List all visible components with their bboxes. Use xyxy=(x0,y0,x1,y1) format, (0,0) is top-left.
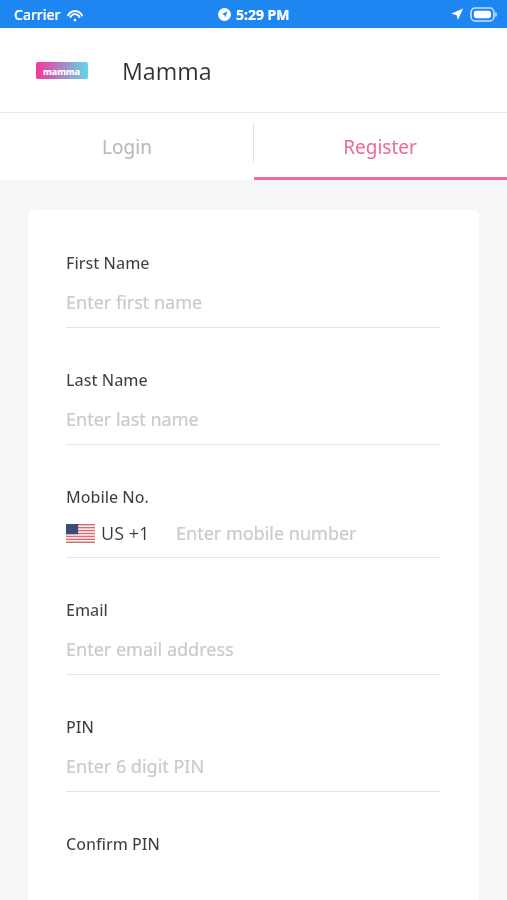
staticText: 5:29 PM xyxy=(236,5,290,24)
button[interactable]: First Name xyxy=(66,252,441,369)
staticText: Mobile No. xyxy=(66,486,149,508)
staticText: Enter 6 digit PIN xyxy=(66,754,205,779)
staticText: Register xyxy=(343,134,417,160)
button[interactable]: Mobile No. xyxy=(66,486,441,599)
staticText: mamma xyxy=(43,65,81,77)
staticText: Enter email address xyxy=(66,637,234,662)
staticText: Carrier xyxy=(14,5,61,24)
other: United States country code xyxy=(66,524,95,543)
staticText: Email xyxy=(66,599,108,621)
staticText: Enter first name xyxy=(66,290,203,315)
staticText: Confirm PIN xyxy=(66,833,160,855)
staticText: Login xyxy=(102,134,152,160)
button[interactable]: PIN xyxy=(66,716,441,833)
staticText: Mamma xyxy=(122,55,212,86)
staticText: Last Name xyxy=(66,369,148,391)
button[interactable]: Login xyxy=(0,113,253,180)
staticText: First Name xyxy=(66,252,150,274)
staticText: Enter last name xyxy=(66,407,199,432)
button[interactable]: Last Name xyxy=(66,369,441,486)
button[interactable]: Email xyxy=(66,599,441,716)
button[interactable]: Register xyxy=(253,113,507,180)
staticText: Enter mobile number xyxy=(176,521,357,546)
staticText: US +1 xyxy=(101,521,150,546)
staticText: PIN xyxy=(66,716,94,738)
